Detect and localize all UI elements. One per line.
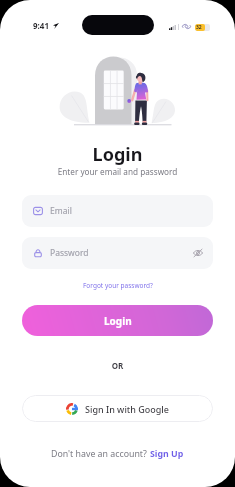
staticText: OR bbox=[0, 360, 235, 371]
staticText: Don't have an account? bbox=[51, 448, 150, 460]
button[interactable]: Email bbox=[22, 195, 213, 227]
staticText: 32 bbox=[196, 24, 202, 31]
staticText: Sign Up bbox=[150, 448, 184, 460]
staticText: Sign In with Google bbox=[85, 403, 169, 415]
staticText: Login bbox=[104, 314, 132, 328]
staticText: Email bbox=[50, 205, 72, 217]
staticText: Password bbox=[50, 247, 89, 259]
staticText: Enter your email and password bbox=[0, 166, 235, 177]
button[interactable]: Forgot your password? bbox=[83, 281, 153, 290]
button[interactable]: Show password bbox=[192, 247, 204, 259]
button[interactable]: Password bbox=[22, 237, 213, 269]
button[interactable]: Sign In with Google bbox=[22, 395, 213, 422]
staticText: Login bbox=[0, 142, 235, 167]
staticText: 9:41 bbox=[33, 20, 49, 31]
staticText: Forgot your password? bbox=[83, 281, 153, 290]
button[interactable]: Sign Up bbox=[150, 448, 184, 460]
button[interactable]: Login bbox=[22, 305, 213, 336]
